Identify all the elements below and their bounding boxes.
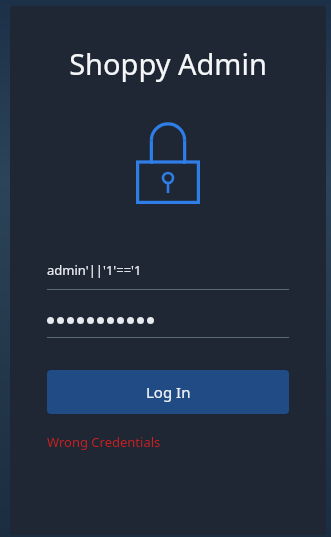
staticText: Wrong Credentials — [47, 433, 161, 451]
button[interactable]: Log In — [47, 370, 289, 414]
button[interactable] — [47, 312, 289, 338]
staticText: Shoppy Admin — [69, 44, 267, 83]
button[interactable]: admin'||'1'=='1 — [47, 261, 289, 290]
other: Lock — [136, 120, 200, 204]
staticText: Log In — [146, 382, 191, 402]
staticText: admin'||'1'=='1 — [47, 261, 142, 279]
